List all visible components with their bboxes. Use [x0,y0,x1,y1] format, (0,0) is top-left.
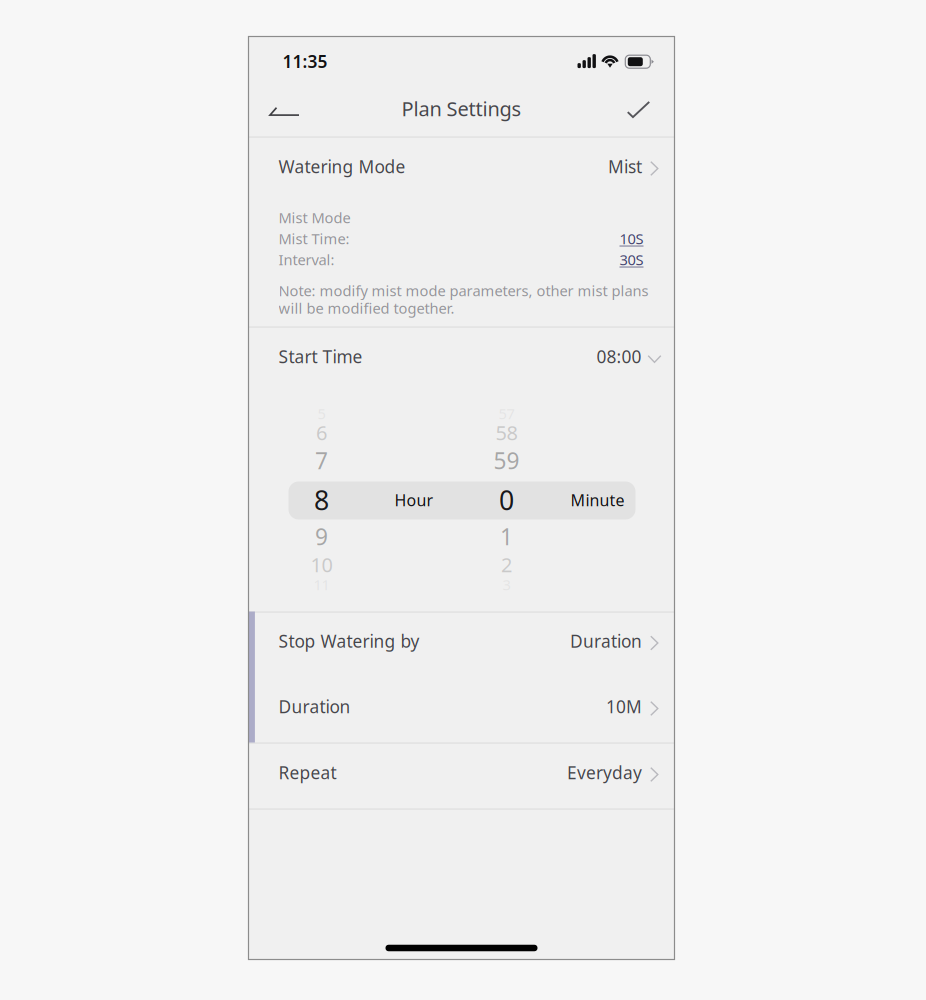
staticText: 0 [499,482,514,518]
button[interactable]: Stop Watering by [248,611,674,676]
staticText: 08:00 [596,345,641,368]
staticText: 58 [495,419,517,446]
staticText: Plan Settings [401,95,521,122]
staticText: Interval: [278,250,334,269]
staticText: will be modified together. [278,298,454,318]
staticText: 5 [317,404,325,423]
staticText: 9 [315,521,328,551]
staticText: 7 [315,445,328,475]
button[interactable]: 10S [616,226,646,251]
staticText: 3 [502,575,510,594]
staticText: 10 [310,551,332,578]
staticText: Note: modify mist mode parameters, other… [278,281,648,300]
staticText: Everyday [567,761,642,784]
button[interactable]: Watering Mode [248,136,674,202]
staticText: 59 [493,445,519,475]
staticText: 10S [619,229,643,248]
staticText: 11 [313,575,329,594]
button[interactable]: 30S [616,247,646,272]
staticText: 57 [498,404,514,423]
button[interactable]: Repeat [248,742,674,808]
button[interactable]: Done [614,87,662,131]
staticText: Start Time [278,345,362,368]
staticText: 1 [500,521,513,551]
staticText: Stop Watering by [278,629,419,652]
staticText: 6 [316,419,327,446]
staticText: 10M [606,695,642,718]
button[interactable]: Hour [268,396,453,611]
staticText: 8 [314,482,329,518]
button[interactable]: Duration [248,676,674,742]
button[interactable]: Start Time [248,326,674,392]
staticText: Minute [570,489,624,511]
staticText: Duration [278,695,350,718]
staticText: 30S [619,250,643,269]
staticText: 11:35 [282,50,327,73]
staticText: Mist Mode [278,208,350,227]
button[interactable]: Back [256,89,312,133]
staticText: Hour [394,489,433,511]
staticText: Repeat [278,761,336,784]
staticText: Duration [570,629,642,652]
staticText: Watering Mode [278,155,405,178]
staticText: Mist [608,155,642,178]
button[interactable]: Minute [453,396,638,611]
staticText: 2 [501,551,512,578]
staticText: Mist Time: [278,229,349,248]
